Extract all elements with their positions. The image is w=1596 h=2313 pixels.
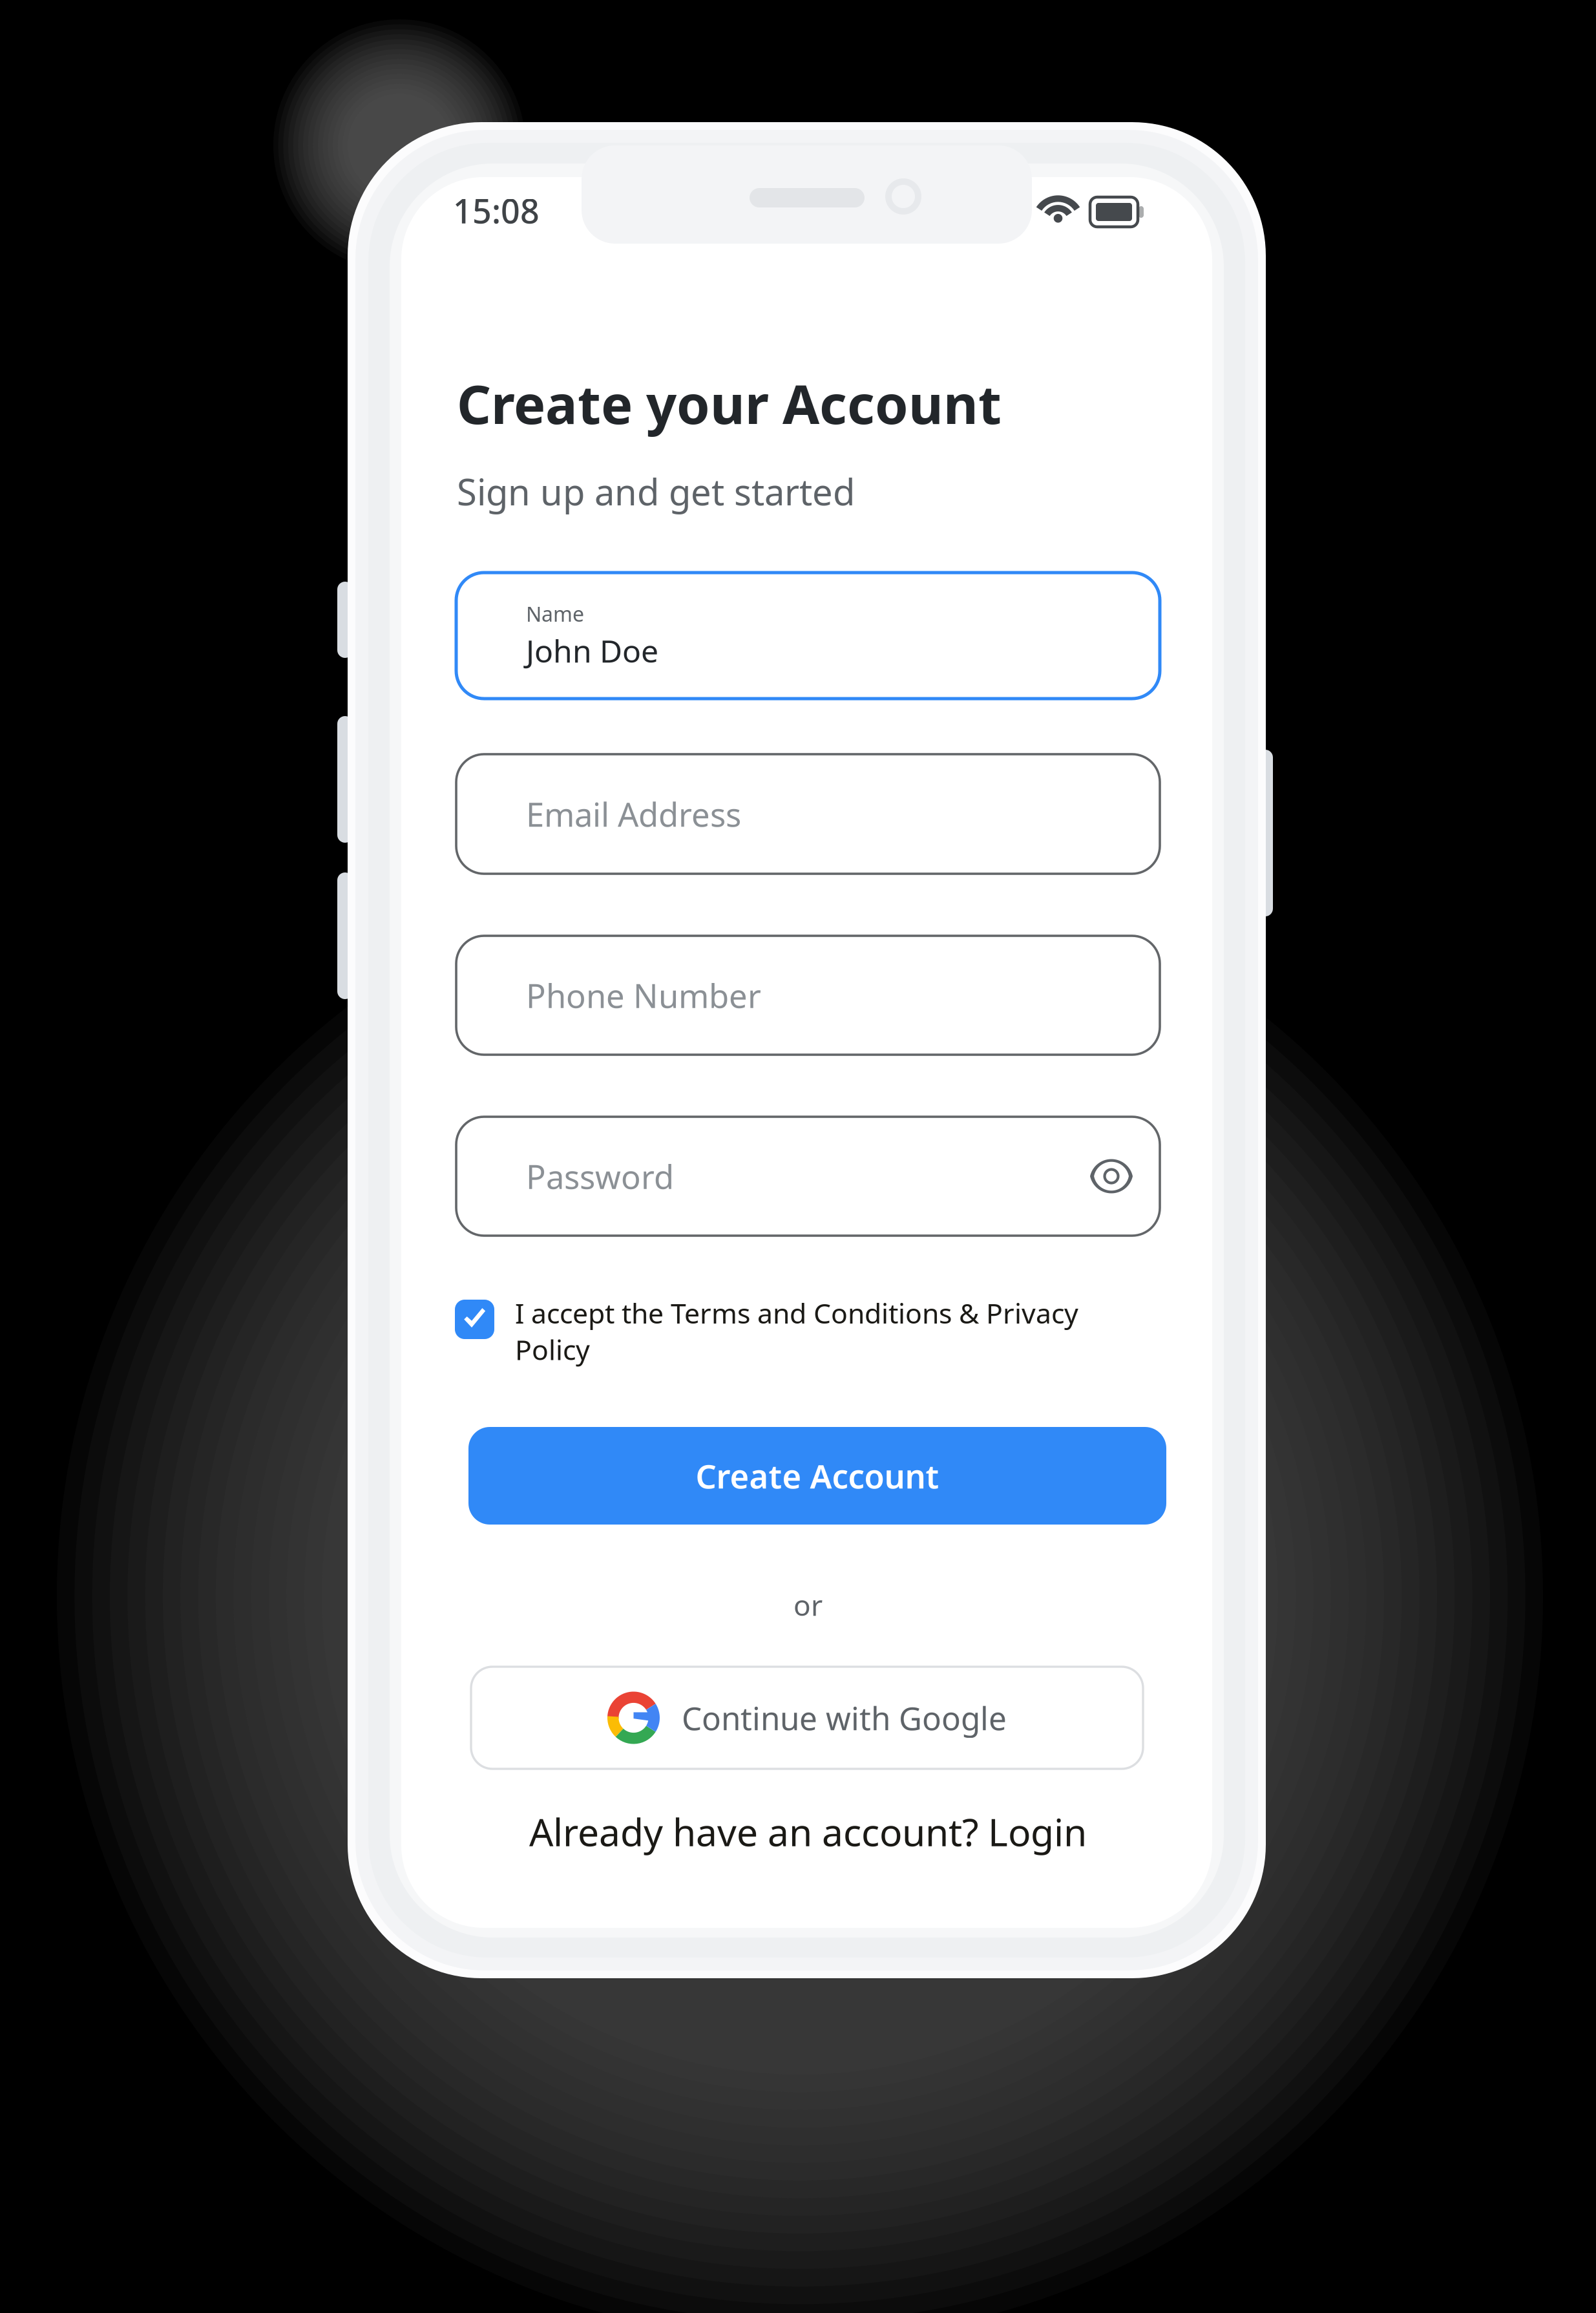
staticText: Name <box>526 600 584 627</box>
staticText: John Doe <box>526 630 658 671</box>
staticText: Create Account <box>696 1454 939 1498</box>
staticText: I accept the Terms and Conditions & Priv… <box>515 1294 1078 1368</box>
button[interactable]: Continue with Google <box>471 1667 1143 1769</box>
staticText: Phone Number <box>526 974 761 1017</box>
staticText: Password <box>526 1154 674 1198</box>
staticText: 15:08 <box>453 188 540 233</box>
staticText: Continue with Google <box>682 1697 1007 1739</box>
button[interactable]: I accept the Terms and Conditions & Priv… <box>456 1294 1160 1368</box>
button[interactable]: Already have an account? Login <box>456 1806 1160 1857</box>
button[interactable]: Show password <box>1090 1159 1133 1193</box>
staticText: Email Address <box>526 792 741 836</box>
staticText: or <box>793 1586 823 1624</box>
staticText: Create your Account <box>457 368 1002 439</box>
staticText: Already have an account? Login <box>529 1806 1087 1857</box>
staticText: Sign up and get started <box>457 467 855 515</box>
button[interactable]: Create Account <box>468 1427 1166 1525</box>
